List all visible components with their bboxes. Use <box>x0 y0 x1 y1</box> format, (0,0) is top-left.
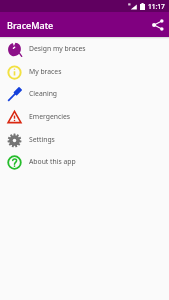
button[interactable]: About this app <box>0 151 169 174</box>
button[interactable]: Design my braces <box>0 38 169 61</box>
staticText: Cleaning <box>29 89 58 98</box>
staticText: About this app <box>29 157 76 166</box>
staticText: Settings <box>29 135 55 144</box>
button[interactable]: Settings <box>0 129 169 152</box>
button[interactable]: Emergencies <box>0 106 169 129</box>
staticText: Design my braces <box>29 44 86 53</box>
button[interactable]: Cleaning <box>0 83 169 106</box>
button[interactable]: My braces <box>0 61 169 84</box>
button[interactable]: Share <box>146 13 169 36</box>
staticText: My braces <box>29 67 62 76</box>
staticText: BraceMate <box>7 19 54 31</box>
staticText: 11:17 <box>148 2 165 11</box>
staticText: Emergencies <box>29 112 71 121</box>
